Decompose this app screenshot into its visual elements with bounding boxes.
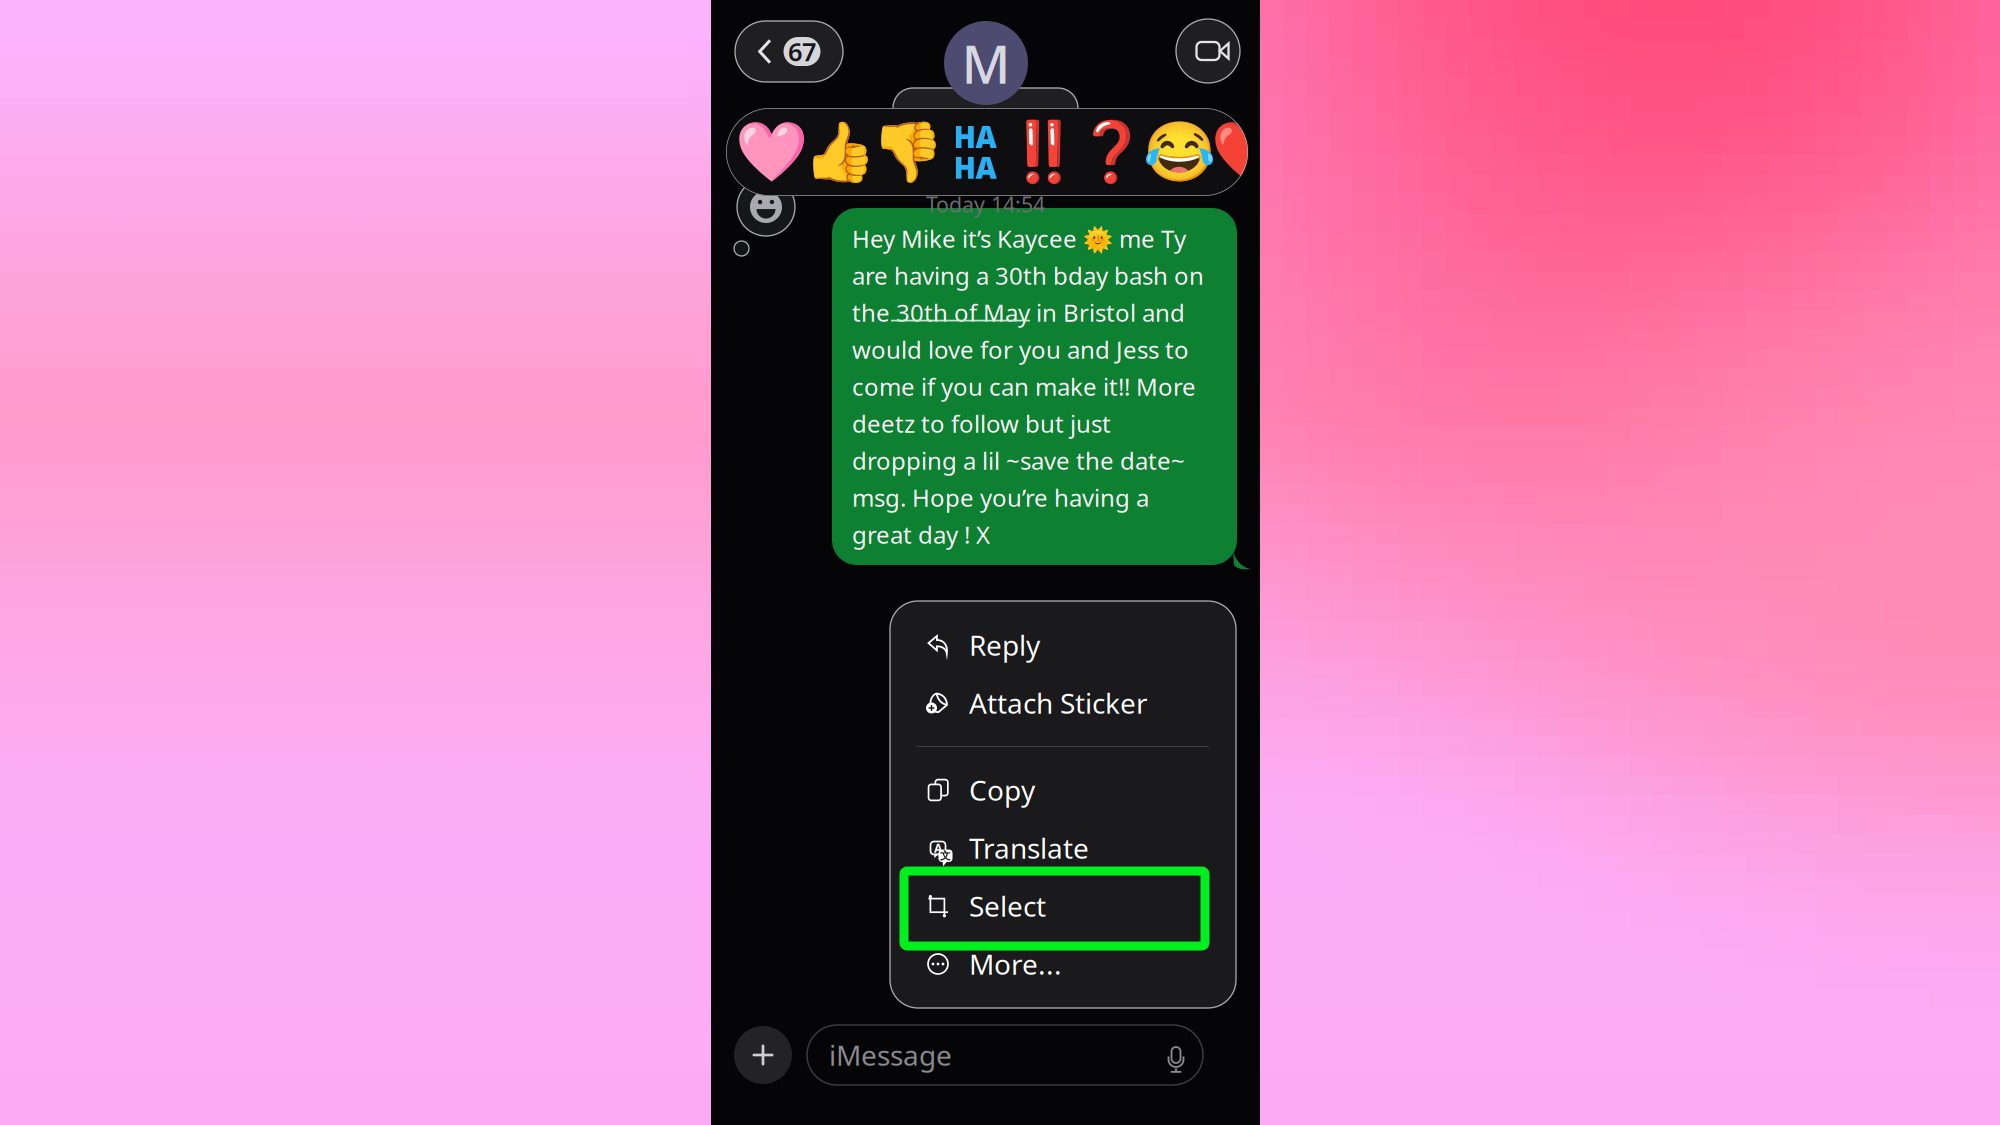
button[interactable]: Tapback reaction — [1009, 108, 1077, 196]
staticText: 😂 — [1142, 118, 1215, 185]
button[interactable]: A — [890, 819, 1236, 877]
staticText: dropping a lil ~save the date~ — [852, 445, 1185, 476]
staticText: ❤️ — [1210, 118, 1283, 185]
staticText: A — [934, 840, 942, 856]
button[interactable]: Copy — [890, 761, 1236, 819]
staticText: great day ! X — [852, 519, 990, 550]
staticText: Translate — [969, 829, 1089, 867]
staticText: come if you can make it!! More — [852, 371, 1196, 402]
staticText: msg. Hope you’re having a — [852, 482, 1149, 513]
staticText: 👍 — [802, 118, 875, 185]
staticText: would love for you and Jess to — [852, 334, 1189, 365]
staticText: 🩷 — [734, 118, 807, 185]
button[interactable]: 67 — [735, 21, 843, 82]
staticText: More... — [969, 945, 1062, 983]
button[interactable]: Contact M — [944, 21, 1028, 105]
staticText: are having a 30th bday bash on — [852, 260, 1204, 291]
staticText: Copy — [969, 771, 1035, 809]
staticText: deetz to follow but just — [852, 408, 1111, 439]
button[interactable]: Attach Sticker — [890, 674, 1236, 732]
staticText: Attach Sticker — [969, 684, 1148, 722]
button[interactable]: Tapback reaction — [737, 108, 805, 196]
staticText: ❓ — [1074, 118, 1147, 185]
staticText: Select — [969, 887, 1046, 925]
button[interactable]: Tapback reaction — [1213, 108, 1281, 196]
button[interactable]: Select — [890, 877, 1236, 935]
staticText: Hey Mike it’s Kaycee 🌞 me Ty — [852, 223, 1186, 254]
staticText: ‼️ — [1006, 118, 1079, 185]
staticText: Reply — [969, 626, 1040, 664]
staticText: HA — [953, 148, 996, 187]
button[interactable]: FaceTime — [1176, 19, 1240, 83]
staticText: HA — [953, 117, 996, 156]
button[interactable]: Tapback reaction — [941, 108, 1009, 196]
staticText: 👎 — [870, 118, 943, 185]
button[interactable]: Tapback reaction — [805, 108, 873, 196]
button[interactable]: Tapback reaction — [1145, 108, 1213, 196]
staticText: 67 — [788, 35, 816, 68]
staticText: 文 — [940, 849, 951, 862]
staticText: M — [961, 28, 1010, 98]
button[interactable]: iMessage — [807, 1025, 1203, 1085]
button[interactable]: Tapback reaction — [1077, 108, 1145, 196]
staticText: Today 14:54 — [926, 190, 1045, 218]
button[interactable]: Add attachment — [734, 1026, 792, 1084]
staticText: the 30th of May in Bristol and — [852, 297, 1185, 328]
button[interactable]: Tapback reaction — [873, 108, 941, 196]
button[interactable]: Reply — [890, 616, 1236, 674]
button[interactable]: More... — [890, 935, 1236, 993]
staticText: iMessage — [829, 1036, 952, 1074]
